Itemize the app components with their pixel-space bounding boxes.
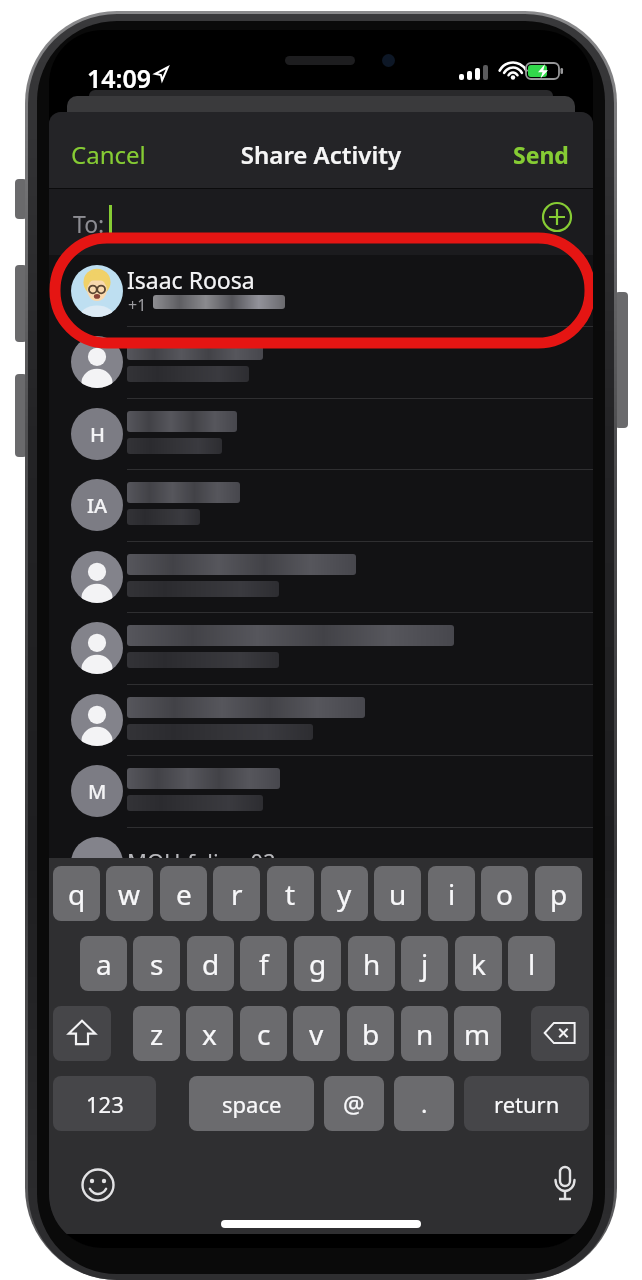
button[interactable]: s — [133, 936, 180, 991]
button[interactable]: x — [186, 1006, 233, 1061]
button[interactable]: g — [294, 936, 341, 991]
staticText: l — [528, 945, 536, 983]
button[interactable] — [552, 1166, 578, 1204]
button[interactable] — [81, 1168, 115, 1202]
staticText: a — [96, 945, 112, 983]
button[interactable]: z — [133, 1006, 180, 1061]
button[interactable]: w — [106, 866, 153, 921]
staticText: 123 — [86, 1089, 124, 1119]
staticText: +1 — [128, 294, 147, 316]
staticText: f — [259, 945, 269, 983]
staticText: u — [389, 875, 407, 913]
button[interactable]: space — [189, 1076, 314, 1131]
staticText: c — [257, 1015, 271, 1053]
button[interactable]: d — [187, 936, 234, 991]
staticText: Cancel — [71, 138, 146, 171]
button[interactable] — [53, 1006, 111, 1061]
staticText: MOU-feliny-02 — [127, 846, 276, 876]
button[interactable]: e — [160, 866, 207, 921]
staticText: IA — [87, 492, 108, 519]
staticText: M — [88, 778, 107, 805]
button[interactable]: n — [401, 1006, 448, 1061]
button[interactable]: a — [80, 936, 127, 991]
button[interactable]: @ — [324, 1076, 384, 1131]
staticText: e — [176, 875, 192, 913]
staticText: 14:09 — [87, 61, 152, 95]
staticText: Share Activity — [49, 138, 593, 172]
button[interactable]: h — [348, 936, 395, 991]
button[interactable]: 123 — [53, 1076, 156, 1131]
staticText: y — [337, 875, 352, 913]
button[interactable]: o — [481, 866, 528, 921]
staticText: k — [471, 945, 486, 983]
button[interactable]: . — [394, 1076, 454, 1131]
staticText: i — [448, 875, 456, 913]
button[interactable]: v — [293, 1006, 340, 1061]
button[interactable]: c — [240, 1006, 287, 1061]
staticText: space — [222, 1089, 282, 1119]
staticText: v — [309, 1015, 324, 1053]
staticText: d — [202, 945, 220, 983]
staticText: g — [309, 945, 327, 983]
button[interactable]: y — [321, 866, 368, 921]
staticText: j — [421, 945, 429, 983]
button[interactable]: i — [428, 866, 475, 921]
button[interactable]: To: — [49, 189, 593, 255]
button[interactable]: m — [454, 1006, 501, 1061]
button[interactable]: l — [508, 936, 555, 991]
button[interactable]: t — [267, 866, 314, 921]
staticText: o — [496, 875, 513, 913]
button[interactable]: return — [464, 1076, 589, 1131]
button[interactable]: Cancel — [71, 138, 146, 171]
button[interactable]: r — [213, 866, 260, 921]
button[interactable]: k — [455, 936, 502, 991]
staticText: s — [150, 945, 164, 983]
button[interactable]: f — [240, 936, 287, 991]
button[interactable]: b — [347, 1006, 394, 1061]
staticText: b — [362, 1015, 380, 1053]
staticText: Send — [513, 139, 569, 170]
button[interactable]: q — [53, 866, 100, 921]
staticText: t — [285, 875, 296, 913]
staticText: r — [231, 875, 243, 913]
staticText: To: — [73, 208, 105, 239]
staticText: z — [150, 1015, 164, 1053]
staticText: x — [202, 1015, 217, 1053]
staticText: w — [118, 875, 141, 913]
button[interactable]: u — [374, 866, 421, 921]
button[interactable]: Send — [513, 139, 569, 170]
staticText: @ — [343, 1087, 365, 1120]
staticText: h — [363, 945, 381, 983]
staticText: Isaac Roosa — [127, 264, 255, 295]
button[interactable]: p — [535, 866, 582, 921]
staticText: m — [464, 1015, 491, 1053]
staticText: H — [90, 421, 105, 448]
staticText: p — [550, 875, 568, 913]
staticText: q — [68, 875, 86, 913]
staticText: n — [416, 1015, 434, 1053]
button[interactable]: j — [401, 936, 448, 991]
staticText: . — [421, 1087, 428, 1120]
button[interactable] — [531, 1006, 589, 1061]
staticText: return — [494, 1089, 560, 1119]
